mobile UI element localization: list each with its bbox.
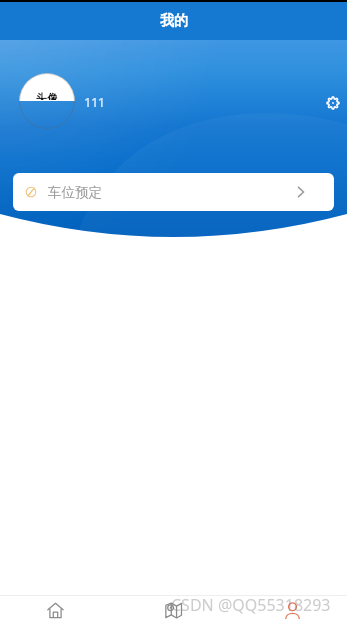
- staticText: 车位预定: [48, 184, 102, 201]
- button[interactable]: Home: [0, 595, 110, 619]
- button[interactable]: 车位预定: [13, 173, 334, 211]
- staticText: 头像: [36, 91, 58, 100]
- button[interactable]: Profile: [237, 595, 347, 619]
- staticText: 111: [84, 93, 105, 111]
- button[interactable]: Avatar: [19, 73, 75, 129]
- button[interactable]: Settings: [320, 90, 346, 116]
- staticText: CSDN @QQ55318293: [171, 594, 331, 616]
- staticText: 我的: [160, 12, 188, 30]
- button[interactable]: Map: [118, 595, 228, 619]
